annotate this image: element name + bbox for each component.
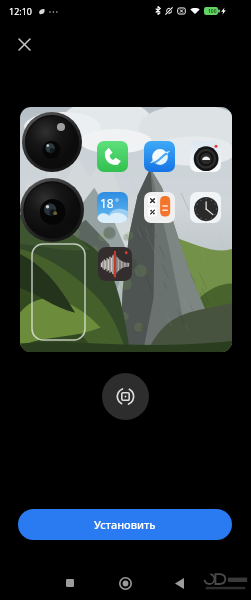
button[interactable]: Home [112,570,138,596]
button[interactable]: Close [12,32,36,56]
button[interactable]: Weather [97,192,128,223]
button[interactable]: Phone [97,141,128,172]
button[interactable]: Shuffle wallpaper [102,373,149,420]
staticText: 18 [100,195,114,211]
button[interactable]: Установить [18,509,232,540]
staticText: 100 [208,8,217,15]
button[interactable]: Calculator [144,192,175,223]
staticText: Установить [94,517,156,532]
button[interactable]: Camera [190,141,221,172]
staticText: 12:10 [9,5,33,17]
button[interactable]: Phone [20,107,232,352]
button[interactable]: Recents [57,570,83,596]
button[interactable]: Back [166,570,192,596]
button[interactable]: Recorder [98,247,132,281]
button[interactable]: Browser [144,141,175,172]
button[interactable]: Clock [190,192,221,223]
